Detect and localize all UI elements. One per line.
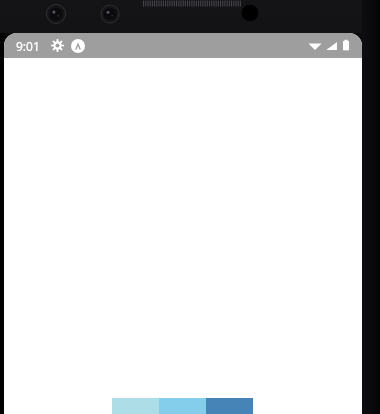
staticText: 9:01 [16, 38, 40, 54]
button[interactable]: App notification [71, 39, 85, 53]
button[interactable]: Settings notification [51, 39, 64, 52]
